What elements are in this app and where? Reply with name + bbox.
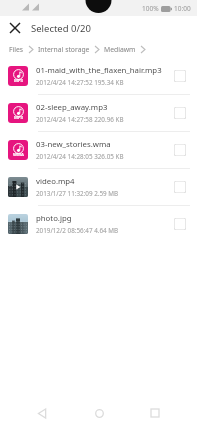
staticText: Files [9, 45, 24, 54]
staticText: 100% [142, 4, 159, 13]
button[interactable]: Back [28, 399, 56, 427]
staticText: MP3 [14, 78, 23, 84]
button[interactable]: photo.jpg [0, 206, 197, 242]
button[interactable]: Select video.mp4 [170, 177, 190, 197]
staticText: 2013/1/27 11:32:09 2.59 MB [36, 189, 119, 198]
button[interactable]: Mediawm [103, 43, 137, 56]
button[interactable]: Select 01-maid_with_the_flaxen_hair.mp3 [170, 66, 190, 86]
button[interactable]: video.mp4 [0, 169, 197, 205]
button[interactable]: Home [85, 399, 113, 427]
staticText: Selected 0/20 [31, 22, 91, 35]
button[interactable]: Select photo.jpg [170, 214, 190, 234]
staticText: video.mp4 [36, 176, 75, 187]
staticText: Internal storage [38, 45, 90, 54]
button[interactable]: Recent apps [141, 399, 169, 427]
button[interactable]: MP3 [0, 95, 197, 131]
staticText: 2019/12/2 08:56:47 4.64 MB [36, 226, 119, 235]
staticText: 2012/4/24 14:28:05 326.05 KB [36, 152, 124, 161]
staticText: Mediawm [104, 45, 136, 54]
button[interactable]: Internal storage [37, 43, 91, 56]
button[interactable]: WMA [0, 132, 197, 168]
staticText: MP3 [14, 115, 23, 121]
button[interactable]: MP3 [0, 58, 197, 94]
staticText: 10:00 [174, 4, 191, 13]
staticText: WMA [13, 152, 24, 158]
staticText: 03-new_stories.wma [36, 139, 111, 150]
staticText: 2012/4/24 14:27:52 195.34 KB [36, 78, 124, 87]
staticText: 2012/4/24 14:27:58 220.96 KB [36, 115, 124, 124]
button[interactable]: Files [8, 43, 25, 56]
button[interactable]: Select 02-sleep_away.mp3 [170, 103, 190, 123]
staticText: photo.jpg [36, 213, 72, 224]
staticText: 02-sleep_away.mp3 [36, 102, 108, 113]
button[interactable]: Close selection [5, 18, 25, 38]
button[interactable]: Select 03-new_stories.wma [170, 140, 190, 160]
staticText: 01-maid_with_the_flaxen_hair.mp3 [36, 65, 162, 76]
